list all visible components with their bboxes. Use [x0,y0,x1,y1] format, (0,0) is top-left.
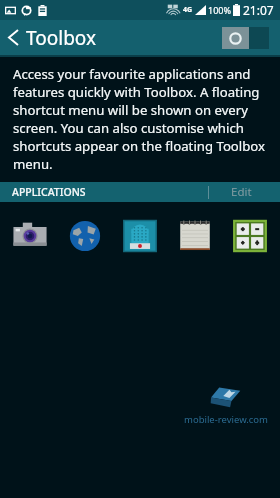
staticText: Toolbox [26,25,96,51]
button[interactable]: Back [0,20,26,55]
button[interactable]: Memo [173,214,217,258]
button[interactable]: Voice recorder [118,214,162,258]
staticText: mobile-review.com [184,413,268,426]
staticText: 21:07 [243,2,274,18]
staticText: APPLICATIONS [12,185,86,199]
button[interactable]: Internet [63,214,107,258]
button[interactable]: Edit [200,182,280,202]
staticText: Edit [231,184,252,200]
staticText: Access your favourite applications and f… [13,65,267,173]
button[interactable]: Toolbox on off switch [222,27,269,49]
button[interactable]: Camera [8,214,52,258]
staticText: 100% [208,4,231,16]
button[interactable]: Calculator [228,214,272,258]
staticText: 4G [183,5,193,15]
